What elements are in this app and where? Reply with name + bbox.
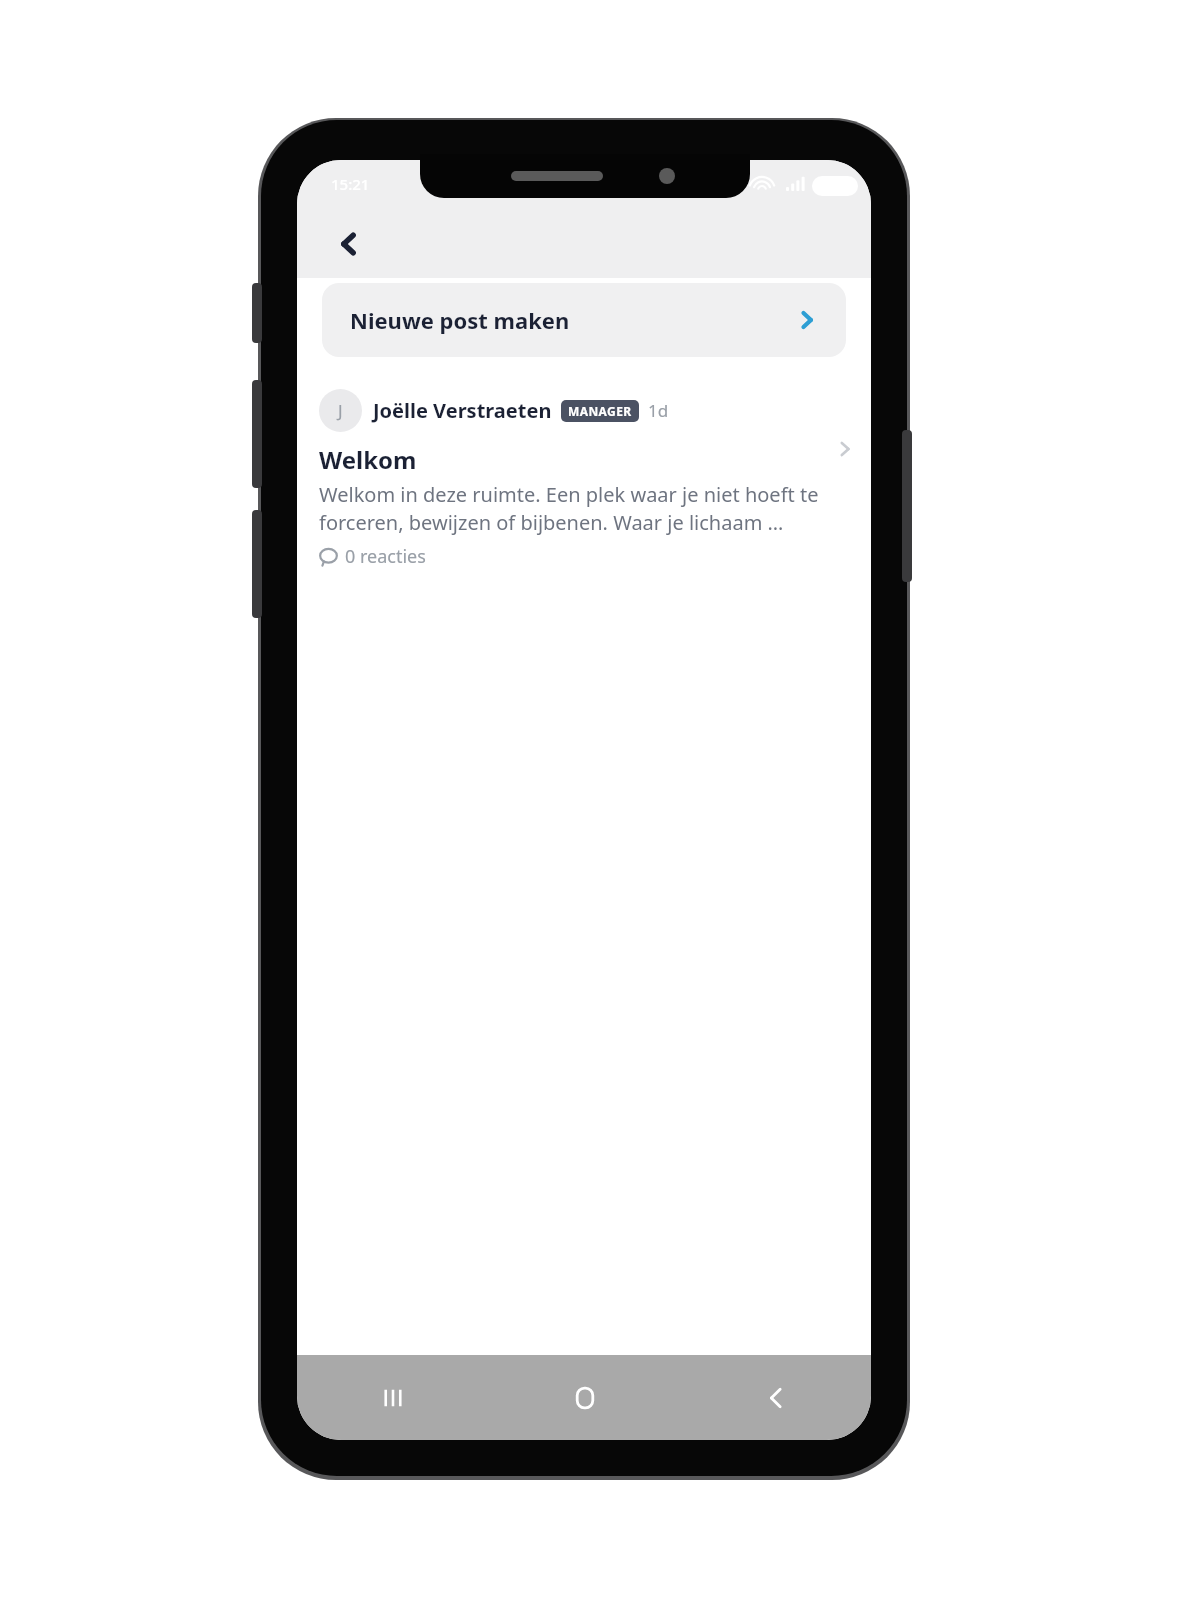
button[interactable]: Home (489, 1355, 680, 1440)
staticText: Nieuwe post maken (350, 305, 570, 335)
button[interactable]: Back (323, 218, 375, 270)
staticText: 15:21 (331, 174, 370, 194)
staticText: Welkom (319, 443, 417, 476)
staticText: MANAGER (568, 403, 632, 419)
button[interactable]: J (297, 389, 871, 569)
staticText: 0 reacties (345, 544, 426, 569)
button[interactable]: Back (680, 1355, 871, 1440)
staticText: 1d (648, 399, 669, 422)
staticText: Welkom in deze ruimte. Een plek waar je … (319, 481, 831, 536)
staticText: Joëlle Verstraeten (373, 397, 552, 424)
staticText: J (338, 399, 343, 422)
button[interactable]: Nieuwe post maken (322, 283, 846, 357)
button[interactable]: Recent apps (297, 1355, 489, 1440)
